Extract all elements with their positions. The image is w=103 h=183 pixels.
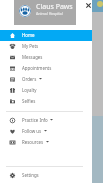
button[interactable]: Practice Info xyxy=(0,115,92,126)
staticText: Home xyxy=(22,32,35,38)
staticText: My Pets xyxy=(22,43,39,49)
staticText: Appointments xyxy=(22,65,52,71)
button[interactable]: Orders xyxy=(0,74,92,85)
staticText: Resources xyxy=(22,139,44,145)
button[interactable]: Loyalty xyxy=(0,85,92,96)
staticText: Practice Info xyxy=(22,117,48,123)
button[interactable]: Messages xyxy=(0,52,92,63)
button[interactable]: Selfies xyxy=(0,96,92,107)
button[interactable]: Resources xyxy=(0,137,92,148)
staticText: Messages xyxy=(22,54,43,60)
button[interactable]: Settings xyxy=(0,170,92,181)
button[interactable]: Follow us xyxy=(0,126,92,137)
staticText: Animal Hospital xyxy=(36,11,63,16)
button[interactable]: Appointments xyxy=(0,63,92,74)
staticText: Selfies xyxy=(22,98,36,104)
button[interactable]: My Pets xyxy=(0,41,92,52)
button[interactable]: Home xyxy=(0,30,92,41)
staticText: Settings xyxy=(22,172,39,178)
staticText: Follow us xyxy=(22,128,42,134)
staticText: Loyalty xyxy=(22,87,37,93)
staticText: Orders xyxy=(22,76,37,82)
button[interactable]: Close drawer xyxy=(83,0,93,10)
staticText: Claus Paws xyxy=(36,2,73,12)
